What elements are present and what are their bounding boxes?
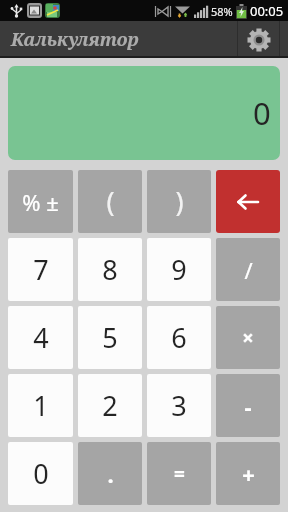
button[interactable]: × xyxy=(216,306,280,369)
staticText: ) xyxy=(175,183,184,220)
staticText: 3 xyxy=(171,387,187,424)
staticText: ( xyxy=(106,183,115,220)
staticText: = xyxy=(174,461,185,487)
button[interactable]: 2 xyxy=(78,374,142,437)
button[interactable]: / xyxy=(216,238,280,301)
staticText: 9 xyxy=(171,251,187,288)
button[interactable]: 6 xyxy=(147,306,211,369)
button[interactable]: ( xyxy=(78,170,142,233)
button[interactable]: % ± xyxy=(8,170,73,233)
staticText: + xyxy=(242,459,255,489)
button[interactable] xyxy=(238,21,279,58)
staticText: 8 xyxy=(102,251,118,288)
button[interactable]: 8 xyxy=(78,238,142,301)
staticText: 7 xyxy=(33,251,49,288)
staticText: 0 xyxy=(33,455,49,492)
button[interactable]: 0 xyxy=(8,442,73,505)
staticText: × xyxy=(242,324,254,351)
staticText: 58% xyxy=(211,4,233,19)
staticText: - xyxy=(244,391,252,421)
button[interactable]: - xyxy=(216,374,280,437)
button[interactable]: . xyxy=(78,442,142,505)
button[interactable]: 4 xyxy=(8,306,73,369)
staticText: 1 xyxy=(33,387,49,424)
staticText: 00:05 xyxy=(250,2,284,20)
staticText: 0 xyxy=(253,92,271,134)
staticText: . xyxy=(107,459,114,489)
staticText: 2 xyxy=(102,387,118,424)
staticText: / xyxy=(244,255,253,285)
button[interactable]: 7 xyxy=(8,238,73,301)
staticText: Калькулятор xyxy=(11,27,139,52)
button[interactable]: 1 xyxy=(8,374,73,437)
staticText: 5 xyxy=(102,319,118,356)
button[interactable]: 3 xyxy=(147,374,211,437)
button[interactable]: + xyxy=(216,442,280,505)
button[interactable]: ) xyxy=(147,170,211,233)
staticText: % ± xyxy=(22,187,59,217)
button[interactable] xyxy=(216,170,280,233)
button[interactable]: 5 xyxy=(78,306,142,369)
staticText: 4 xyxy=(33,319,49,356)
button[interactable]: = xyxy=(147,442,211,505)
button[interactable]: 9 xyxy=(147,238,211,301)
staticText: 6 xyxy=(171,319,187,356)
